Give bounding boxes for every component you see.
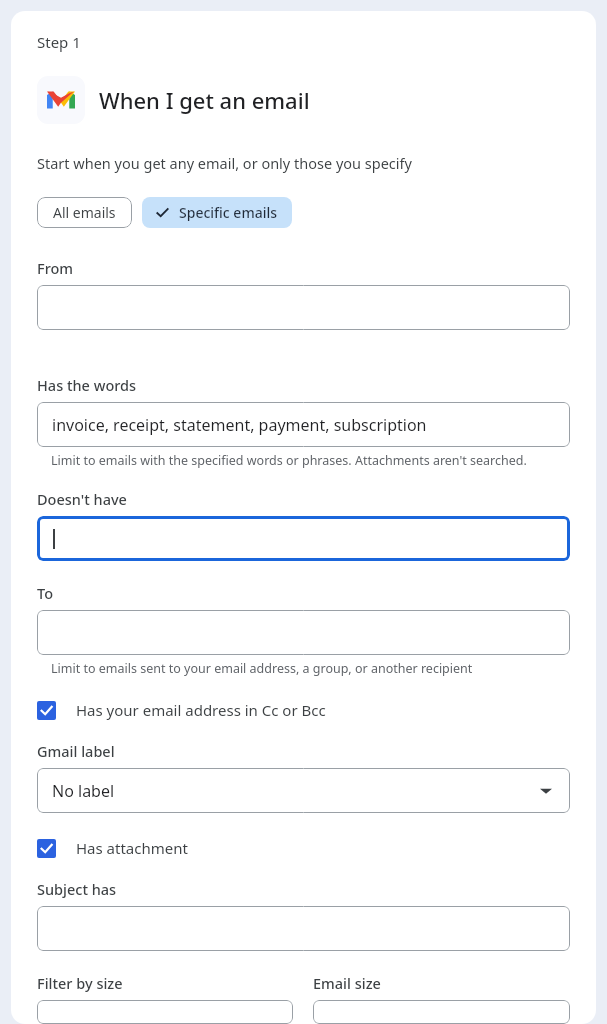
- staticText: Gmail label: [37, 741, 115, 761]
- staticText: No label: [52, 780, 115, 802]
- button[interactable]: [37, 906, 570, 951]
- staticText: To: [37, 583, 53, 603]
- staticText: Has the words: [37, 375, 137, 395]
- staticText: Specific emails: [179, 203, 278, 222]
- staticText: Doesn't have: [37, 489, 127, 509]
- staticText: Filter by size: [37, 973, 123, 993]
- staticText: Step 1: [37, 32, 81, 52]
- button[interactable]: [37, 516, 570, 561]
- staticText: Email size: [313, 973, 381, 993]
- button[interactable]: [37, 1000, 293, 1024]
- button[interactable]: [37, 610, 570, 655]
- staticText: Start when you get any email, or only th…: [37, 153, 412, 173]
- staticText: From: [37, 258, 74, 278]
- button[interactable]: Has attachment: [37, 838, 570, 858]
- button[interactable]: All emails: [37, 197, 132, 228]
- button[interactable]: No label: [37, 768, 570, 813]
- staticText: Has attachment: [76, 838, 188, 858]
- staticText: All emails: [53, 203, 116, 222]
- staticText: When I get an email: [99, 85, 310, 115]
- staticText: Limit to emails sent to your email addre…: [51, 660, 473, 677]
- button[interactable]: [37, 285, 570, 330]
- staticText: Subject has: [37, 879, 117, 899]
- staticText: Has your email address in Cc or Bcc: [76, 700, 326, 720]
- button[interactable]: [313, 1000, 570, 1024]
- button[interactable]: Specific emails: [142, 197, 292, 228]
- button[interactable]: Has your email address in Cc or Bcc: [37, 700, 570, 720]
- staticText: invoice, receipt, statement, payment, su…: [52, 414, 427, 436]
- staticText: Limit to emails with the specified words…: [51, 452, 527, 469]
- button[interactable]: invoice, receipt, statement, payment, su…: [37, 402, 570, 447]
